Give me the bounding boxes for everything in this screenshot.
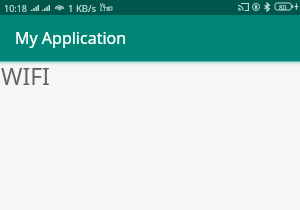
staticText: My Application	[15, 27, 127, 49]
other: Mute	[252, 3, 260, 11]
button[interactable]: WIFI	[0, 60, 300, 91]
staticText: LTE	[100, 5, 110, 13]
staticText: Vo	[100, 2, 106, 8]
other: Battery 80 percent, charging	[275, 3, 298, 10]
staticText: 80	[279, 3, 287, 10]
staticText: 1 KB/s	[68, 2, 97, 15]
staticText: WIFI	[1, 60, 50, 91]
other: Bluetooth	[264, 3, 270, 11]
staticText: 10:18	[4, 2, 28, 14]
other: Cast	[238, 3, 249, 11]
